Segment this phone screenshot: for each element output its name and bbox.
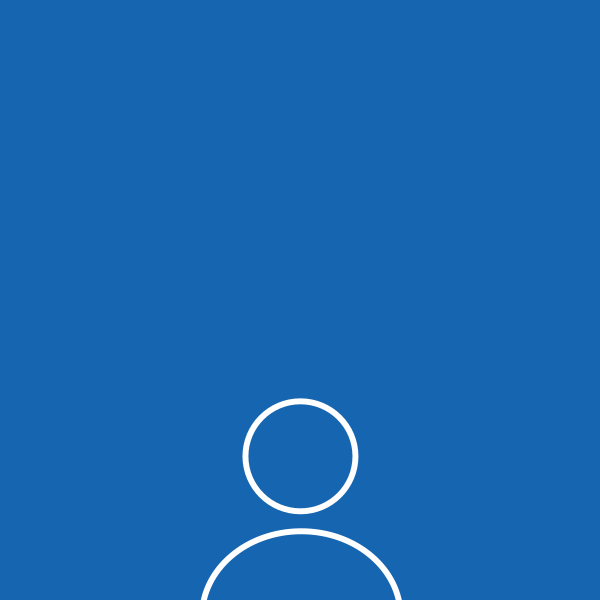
button[interactable]: Profile photo xyxy=(0,0,600,600)
